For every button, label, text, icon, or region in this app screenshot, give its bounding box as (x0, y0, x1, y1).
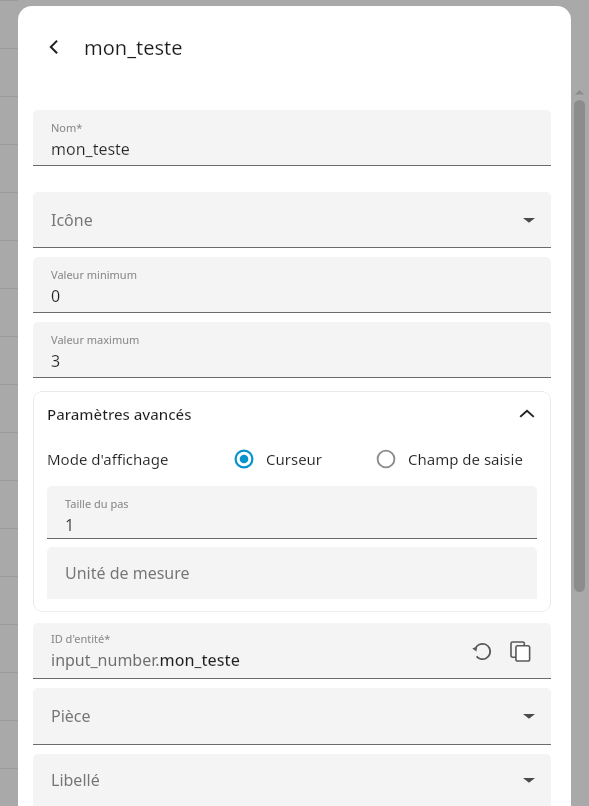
staticText: Icône (51, 209, 93, 231)
staticText: Valeur maximum (51, 332, 140, 347)
button[interactable]: Curseur (231, 446, 323, 472)
button[interactable]: Unité de mesure (47, 547, 537, 599)
button[interactable]: Taille du pas (47, 486, 537, 539)
staticText: Mode d'affichage (47, 449, 169, 469)
button[interactable]: Restore default (465, 634, 499, 668)
button[interactable]: Valeur maximum (33, 322, 551, 378)
staticText: Curseur (266, 449, 323, 469)
staticText: Valeur minimum (51, 267, 137, 282)
button[interactable]: Champ de saisie (373, 446, 523, 472)
button[interactable]: Icône (33, 192, 551, 248)
staticText: input_number.mon_teste (51, 649, 240, 671)
staticText: Unité de mesure (65, 562, 190, 584)
staticText: 0 (51, 285, 61, 307)
button[interactable]: Pièce (33, 688, 551, 745)
staticText: Libellé (51, 769, 100, 791)
staticText: ID d'entité* (51, 631, 111, 646)
staticText: Paramètres avancés (47, 404, 192, 424)
button[interactable]: Copy (503, 634, 537, 668)
button[interactable]: Back (34, 27, 74, 67)
staticText: mon_teste (84, 34, 183, 61)
staticText: Pièce (51, 705, 91, 727)
button[interactable]: Nom* (33, 110, 551, 166)
staticText: Taille du pas (65, 496, 129, 511)
button[interactable]: Valeur minimum (33, 257, 551, 313)
button[interactable]: Paramètres avancés (33, 391, 551, 436)
staticText: mon_teste (51, 138, 130, 160)
staticText: 1 (65, 514, 75, 536)
button[interactable]: Libellé (33, 754, 551, 806)
staticText: Nom* (51, 120, 83, 135)
staticText: 3 (51, 350, 61, 372)
staticText: Champ de saisie (408, 449, 523, 469)
